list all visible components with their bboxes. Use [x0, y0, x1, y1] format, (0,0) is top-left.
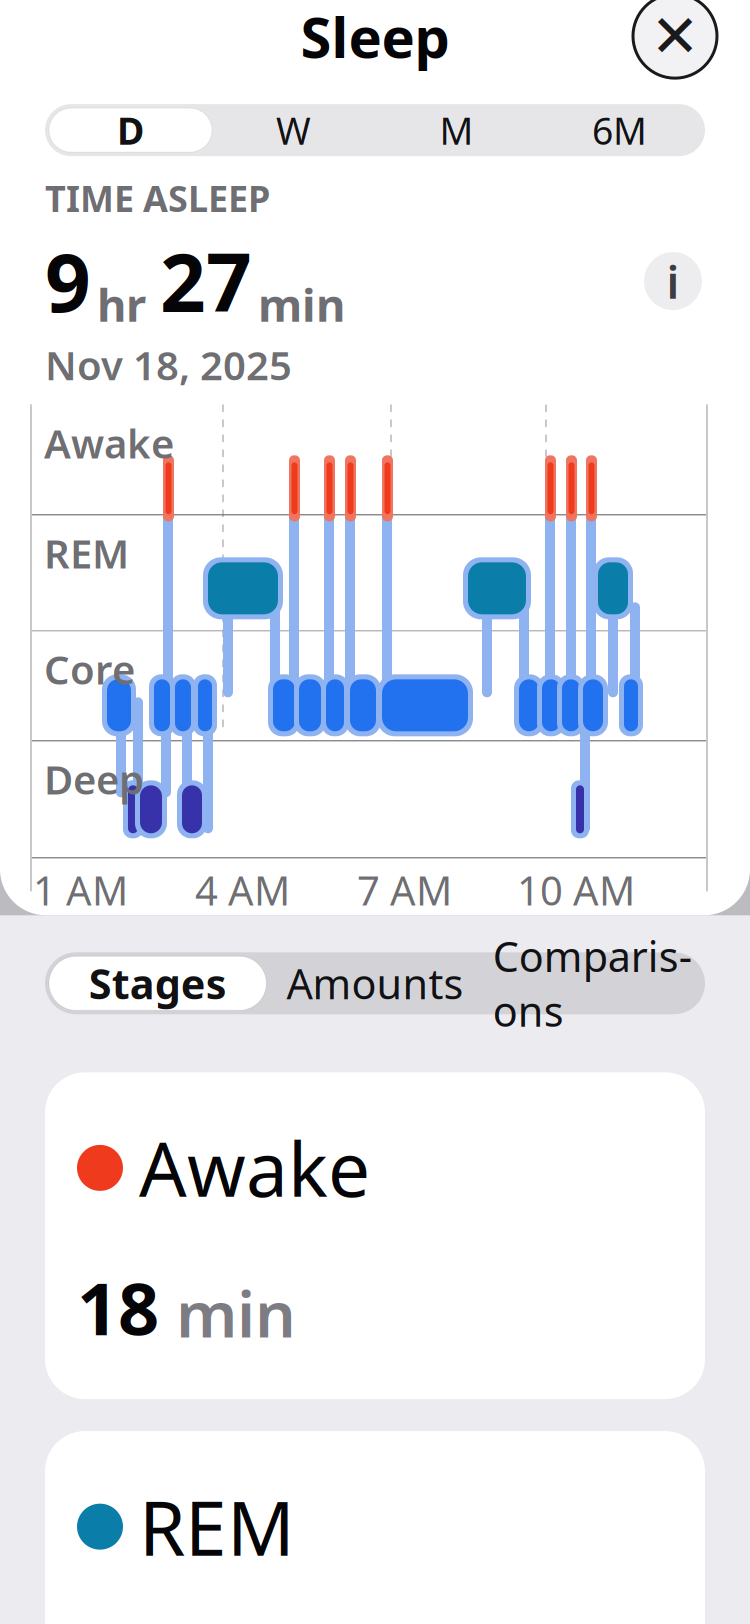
staticText: Deep: [44, 752, 144, 805]
staticText: 7 AM: [357, 863, 452, 916]
staticText: TIME ASLEEP: [45, 174, 270, 222]
staticText: 4 AM: [195, 863, 290, 916]
staticText: Awake: [139, 1118, 370, 1217]
button[interactable]: M: [375, 108, 538, 152]
staticText: i: [666, 251, 679, 311]
button[interactable]: Stages: [49, 956, 266, 1010]
staticText: hr: [97, 274, 146, 334]
staticText: 27: [160, 228, 252, 334]
staticText: 10 AM: [517, 863, 635, 916]
staticText: W: [276, 105, 311, 155]
staticText: min: [258, 274, 345, 334]
staticText: Core: [44, 642, 135, 695]
staticText: Amounts: [286, 956, 463, 1011]
button[interactable]: About time asleep: [641, 249, 705, 313]
staticText: D: [117, 105, 144, 155]
button[interactable]: Comparisons: [484, 956, 701, 1010]
staticText: 18: [77, 1259, 159, 1355]
staticText: 1 AM: [33, 863, 128, 916]
staticText: Sleep: [300, 0, 449, 73]
staticText: REM: [44, 526, 129, 579]
button[interactable]: 6M: [538, 108, 701, 152]
staticText: Nov 18, 2025: [45, 338, 292, 391]
staticText: min: [159, 1270, 296, 1355]
button[interactable]: W: [212, 108, 375, 152]
staticText: Awake: [44, 416, 174, 469]
button[interactable]: D: [49, 108, 212, 152]
staticText: Stages: [89, 956, 227, 1011]
staticText: REM: [139, 1477, 295, 1576]
staticText: ✕: [650, 3, 699, 69]
staticText: 9: [45, 228, 91, 334]
button[interactable]: Close: [627, 0, 723, 84]
staticText: Comparisons: [493, 928, 692, 1038]
staticText: M: [439, 105, 473, 155]
button[interactable]: Amounts: [266, 956, 484, 1010]
staticText: 6M: [592, 105, 647, 155]
